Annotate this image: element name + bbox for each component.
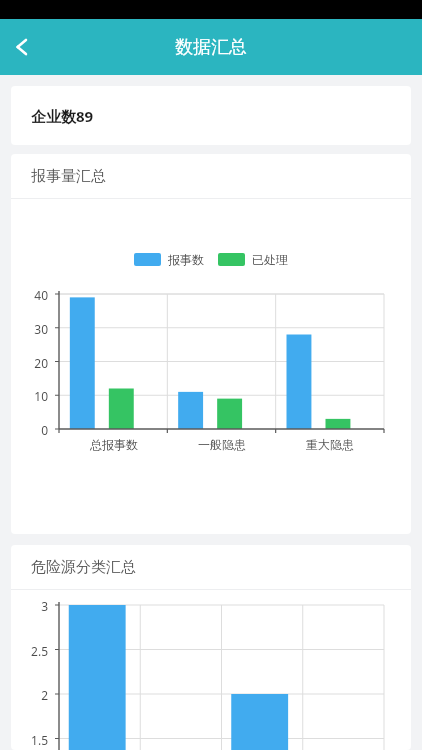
button[interactable]: 危险源分类汇总 — [11, 545, 411, 589]
staticText: 企业数89 — [31, 106, 94, 126]
staticText: 20 — [23, 355, 48, 371]
button[interactable]: 企业数89 — [11, 86, 411, 145]
staticText: 3 — [17, 598, 48, 614]
staticText: 报事数 — [168, 252, 204, 267]
staticText: 重大隐患 — [306, 437, 354, 452]
staticText: 10 — [23, 388, 48, 404]
staticText: 数据汇总 — [175, 36, 247, 59]
staticText: 总报事数 — [90, 437, 138, 452]
staticText: 2 — [17, 687, 48, 703]
staticText: 0 — [23, 422, 48, 438]
staticText: 30 — [23, 321, 48, 337]
staticText: 1.5 — [17, 732, 48, 748]
staticText: 2.5 — [17, 643, 48, 659]
button[interactable]: 报事量汇总 — [11, 154, 411, 198]
staticText: 报事量汇总 — [31, 167, 106, 186]
button[interactable]: Back — [0, 25, 44, 69]
staticText: 危险源分类汇总 — [31, 558, 136, 577]
staticText: 一般隐患 — [198, 437, 246, 452]
staticText: 已处理 — [252, 252, 288, 267]
staticText: 40 — [23, 287, 48, 303]
